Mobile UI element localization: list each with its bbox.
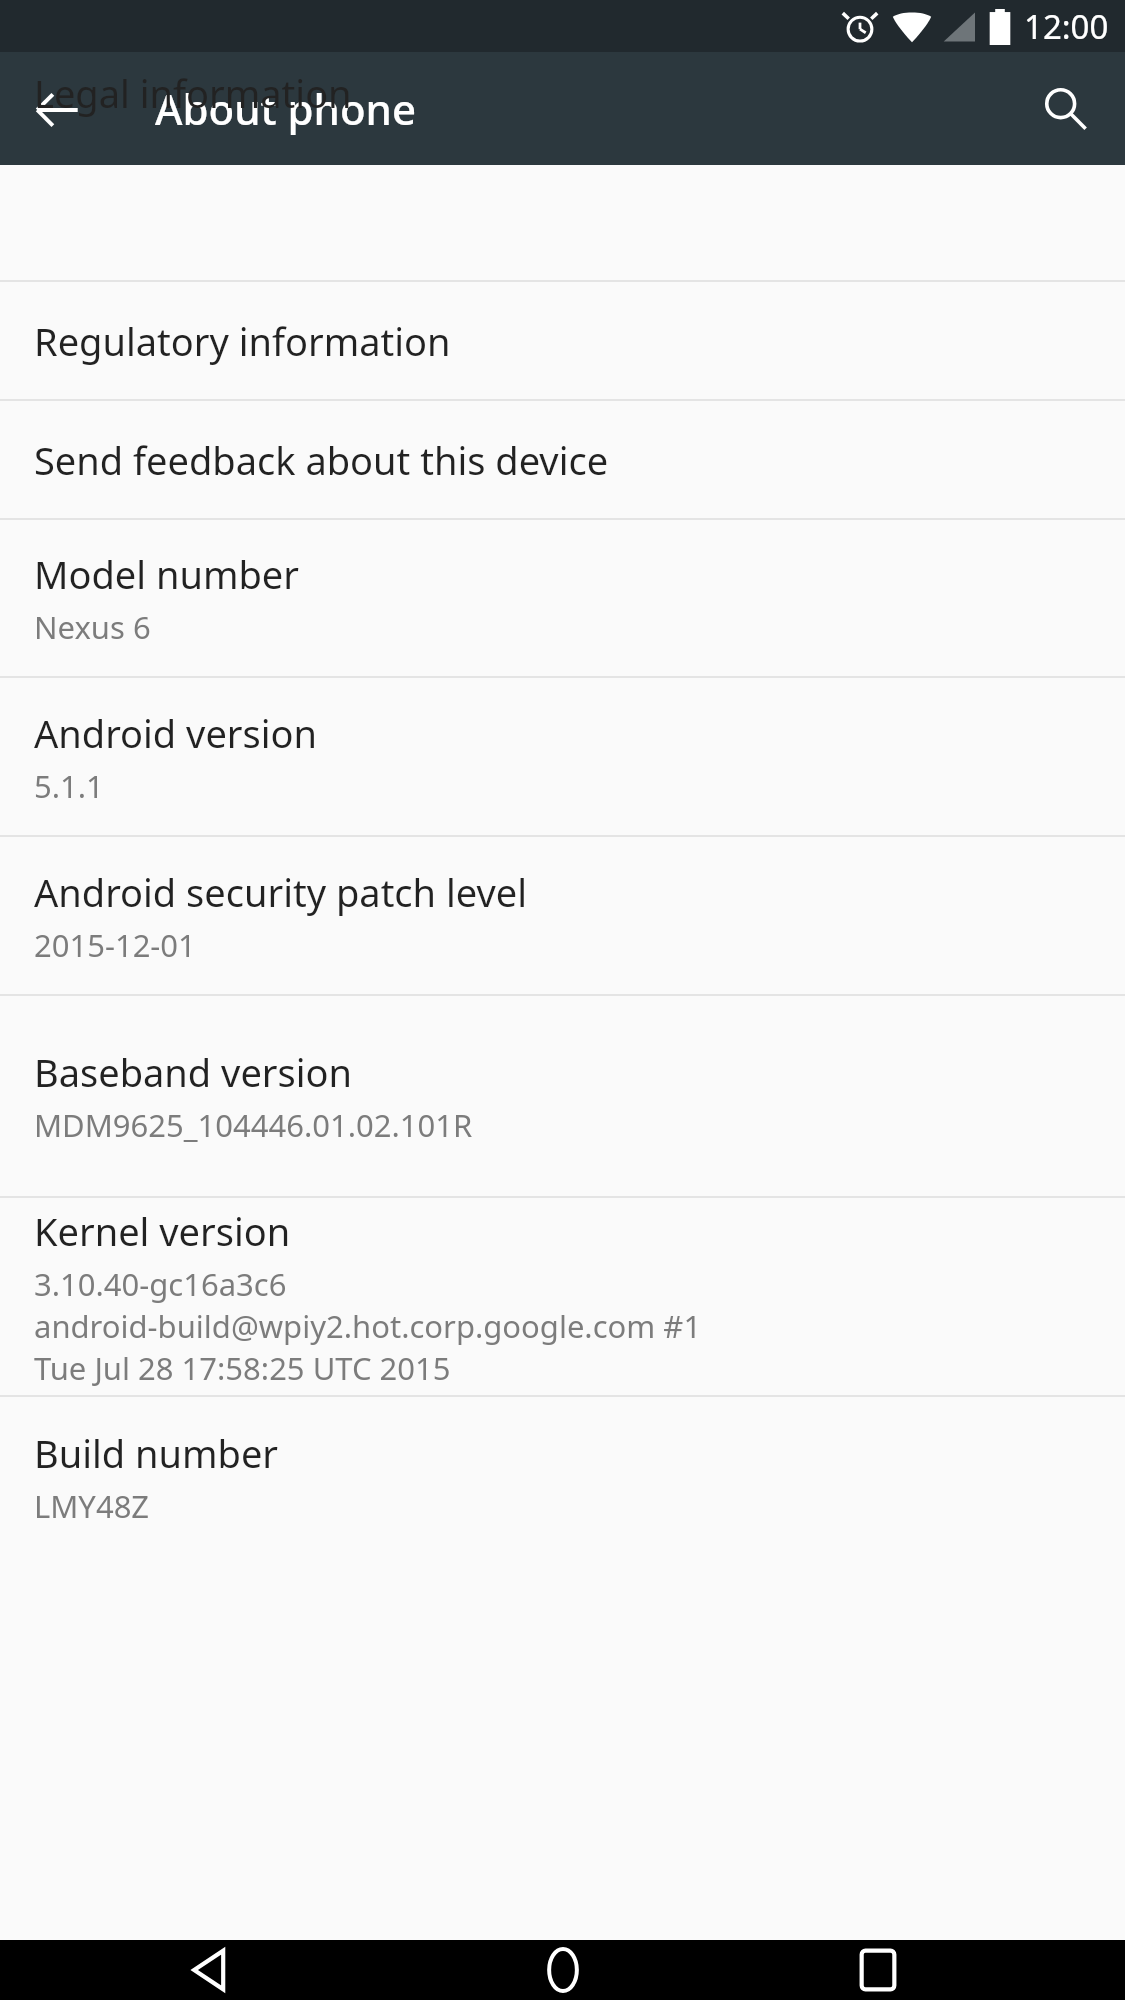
staticText: About phone [155,80,417,137]
button[interactable]: Model number [0,520,1125,676]
staticText: Nexus 6 [34,606,151,648]
button[interactable]: Android version [0,678,1125,835]
button[interactable]: Kernel version [0,1198,1125,1395]
staticText: Tue Jul 28 17:58:25 UTC 2015 [34,1347,451,1389]
button[interactable]: Search [1019,63,1111,155]
button[interactable]: Recent apps [808,1940,948,2000]
staticText: 5.1.1 [34,765,104,807]
staticText: LMY48Z [34,1485,150,1527]
staticText: Model number [34,548,299,600]
staticText: Legal information [34,67,352,119]
button[interactable]: Build number [0,1397,1125,1557]
button[interactable]: Home [493,1940,633,2000]
staticText: 12:00 [1024,4,1109,49]
staticText: Android security patch level [34,866,527,918]
staticText: Build number [34,1427,279,1479]
staticText: 3.10.40-gc16a3c6 [34,1263,287,1305]
staticText: Send feedback about this device [34,434,609,486]
button[interactable]: Back [140,1940,280,2000]
staticText: Android version [34,707,318,759]
staticText: Baseband version [34,1046,352,1098]
staticText: android-build@wpiy2.hot.corp.google.com … [34,1305,702,1347]
button[interactable]: Android security patch level [0,837,1125,994]
button[interactable]: Baseband version [0,996,1125,1196]
button[interactable]: Regulatory information [0,282,1125,399]
staticText: Kernel version [34,1205,291,1257]
button[interactable]: Send feedback about this device [0,401,1125,518]
staticText: 2015-12-01 [34,924,196,966]
staticText: Regulatory information [34,315,451,367]
staticText: MDM9625_104446.01.02.101R [34,1104,473,1146]
button[interactable]: Back [12,64,102,154]
